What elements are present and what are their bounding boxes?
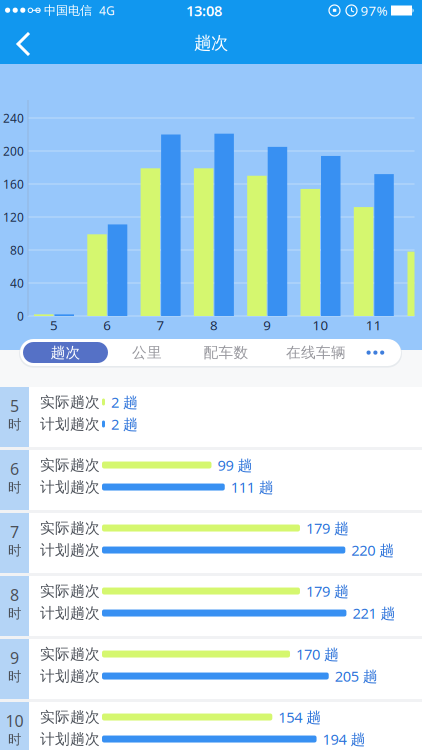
staticText: 179 趟 <box>306 581 349 601</box>
staticText: 实际趟次 <box>40 582 100 600</box>
staticText: 154 趟 <box>278 707 321 727</box>
staticText: 170 趟 <box>296 644 339 664</box>
staticText: 220 趟 <box>351 540 394 560</box>
staticText: 179 趟 <box>306 518 349 538</box>
button[interactable]: 配车数 <box>186 339 266 366</box>
staticText: 7 <box>10 521 19 542</box>
staticText: 13:08 <box>186 1 222 20</box>
staticText: 0 <box>17 308 24 324</box>
staticText: 7 <box>157 316 165 334</box>
staticText: 实际趟次 <box>40 456 100 474</box>
staticText: 实际趟次 <box>40 393 100 411</box>
staticText: 120 <box>3 209 24 225</box>
staticText: 10 <box>312 316 328 334</box>
button[interactable] <box>366 339 401 366</box>
staticText: 公里 <box>132 343 162 361</box>
staticText: 9 <box>263 316 271 334</box>
staticText: 9 <box>10 647 19 668</box>
staticText: 11 <box>366 316 382 334</box>
staticText: 时 <box>8 416 21 433</box>
staticText: 2 趟 <box>111 414 138 434</box>
staticText: 配车数 <box>203 343 248 361</box>
staticText: 4G <box>99 2 115 18</box>
staticText: 240 <box>3 110 24 126</box>
button[interactable]: 公里 <box>108 339 186 366</box>
staticText: 计划趟次 <box>40 667 100 685</box>
staticText: 111 趟 <box>231 477 274 497</box>
staticText: 99 趟 <box>217 455 252 475</box>
button[interactable]: 趟次 <box>23 342 108 363</box>
staticText: 中国电信 <box>44 3 92 18</box>
staticText: 时 <box>8 605 21 622</box>
staticText: 221 趟 <box>352 603 395 623</box>
staticText: 计划趟次 <box>40 541 100 559</box>
staticText: 80 <box>10 242 24 258</box>
staticText: 194 趟 <box>323 729 366 749</box>
staticText: 实际趟次 <box>40 519 100 537</box>
staticText: 时 <box>8 668 21 685</box>
staticText: 时 <box>8 479 21 496</box>
staticText: 97% <box>360 2 387 19</box>
staticText: 40 <box>10 275 24 291</box>
staticText: 计划趟次 <box>40 730 100 748</box>
staticText: 6 <box>103 316 111 334</box>
staticText: 8 <box>210 316 218 334</box>
staticText: 计划趟次 <box>40 415 100 433</box>
staticText: 趟次 <box>50 343 80 361</box>
staticText: 2 趟 <box>111 392 138 412</box>
staticText: 5 <box>50 316 58 334</box>
button[interactable] <box>0 20 48 64</box>
staticText: 计划趟次 <box>40 604 100 622</box>
staticText: 205 趟 <box>335 666 378 686</box>
staticText: 160 <box>3 176 24 192</box>
staticText: 实际趟次 <box>40 708 100 726</box>
staticText: 6 <box>10 458 19 479</box>
button[interactable]: 在线车辆 <box>266 339 366 366</box>
staticText: 5 <box>10 395 19 416</box>
staticText: 时 <box>8 542 21 559</box>
staticText: 趟次 <box>194 32 228 54</box>
staticText: 时 <box>8 731 21 748</box>
staticText: 200 <box>3 143 24 159</box>
staticText: 在线车辆 <box>286 343 346 361</box>
staticText: 10 <box>5 710 23 731</box>
staticText: 实际趟次 <box>40 645 100 663</box>
staticText: 计划趟次 <box>40 478 100 496</box>
staticText: 8 <box>10 584 19 605</box>
